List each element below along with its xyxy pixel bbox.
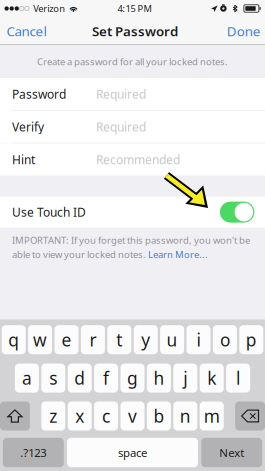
- button[interactable]: e: [54, 325, 78, 354]
- button[interactable]: k: [200, 364, 224, 393]
- staticText: .?123: [20, 445, 46, 460]
- staticText: p: [246, 328, 257, 351]
- button[interactable]: y: [134, 325, 158, 354]
- button[interactable]: Shift: [0, 401, 30, 430]
- staticText: f: [103, 366, 109, 390]
- staticText: Learn More...: [148, 248, 208, 261]
- button[interactable]: w: [28, 325, 52, 354]
- staticText: s: [49, 366, 57, 390]
- staticText: r: [89, 328, 96, 351]
- staticText: Recommended: [96, 151, 180, 168]
- button[interactable]: b: [147, 401, 171, 430]
- staticText: b: [153, 404, 164, 428]
- button[interactable]: d: [68, 364, 92, 393]
- staticText: Cancel: [6, 22, 46, 40]
- staticText: u: [167, 328, 178, 351]
- button[interactable]: Verify: [0, 111, 265, 143]
- button[interactable]: c: [94, 401, 118, 430]
- staticText: Create a password for all your locked no…: [37, 55, 228, 68]
- staticText: Password: [12, 86, 66, 102]
- button[interactable]: Done: [218, 17, 265, 45]
- button[interactable]: o: [213, 325, 237, 354]
- staticText: Done: [227, 22, 261, 40]
- staticText: j: [183, 366, 187, 390]
- button[interactable]: r: [81, 325, 105, 354]
- button[interactable]: v: [120, 401, 144, 430]
- button[interactable]: s: [41, 364, 65, 393]
- staticText: space: [118, 445, 147, 460]
- staticText: y: [141, 328, 150, 351]
- button[interactable]: x: [68, 401, 92, 430]
- button[interactable]: i: [186, 325, 210, 354]
- staticText: Required: [96, 119, 146, 135]
- button[interactable]: n: [173, 401, 197, 430]
- button[interactable]: Hint: [0, 144, 265, 176]
- staticText: c: [102, 404, 110, 428]
- button[interactable]: Next: [201, 438, 262, 467]
- staticText: v: [128, 404, 137, 428]
- staticText: Next: [219, 445, 244, 460]
- button[interactable]: space: [67, 438, 198, 467]
- button[interactable]: j: [173, 364, 197, 393]
- staticText: Hint: [12, 151, 35, 168]
- staticText: m: [204, 404, 220, 428]
- button[interactable]: m: [200, 401, 224, 430]
- staticText: i: [196, 328, 200, 351]
- button[interactable]: q: [2, 325, 26, 354]
- button[interactable]: u: [160, 325, 184, 354]
- staticText: 4:15 PM: [117, 2, 151, 15]
- button[interactable]: a: [15, 364, 39, 393]
- button[interactable]: h: [147, 364, 171, 393]
- staticText: h: [153, 366, 164, 390]
- button[interactable]: p: [239, 325, 263, 354]
- staticText: e: [61, 328, 71, 351]
- staticText: able to view your locked notes.: [12, 248, 148, 261]
- staticText: x: [75, 404, 84, 428]
- staticText: l: [236, 366, 240, 390]
- staticText: d: [74, 366, 85, 390]
- staticText: g: [127, 366, 138, 390]
- staticText: Required: [96, 86, 146, 102]
- staticText: n: [180, 404, 191, 428]
- staticText: Use Touch ID: [12, 204, 86, 220]
- staticText: Verizon: [33, 2, 65, 15]
- button[interactable]: z: [41, 401, 65, 430]
- staticText: k: [207, 366, 216, 390]
- button[interactable]: Password: [0, 78, 265, 110]
- staticText: a: [22, 366, 32, 390]
- staticText: Set Password: [92, 22, 178, 40]
- staticText: Verify: [12, 119, 44, 135]
- staticText: IMPORTANT: If you forget this password, …: [12, 234, 250, 246]
- staticText: o: [220, 328, 230, 351]
- button[interactable]: Cancel: [0, 17, 55, 45]
- button[interactable]: l: [226, 364, 250, 393]
- staticText: q: [8, 328, 19, 351]
- button[interactable]: Learn More...: [148, 248, 208, 261]
- button[interactable]: g: [120, 364, 144, 393]
- button[interactable]: Use Touch ID: [220, 202, 254, 223]
- button[interactable]: f: [94, 364, 118, 393]
- button[interactable]: .?123: [3, 438, 64, 467]
- button[interactable]: t: [107, 325, 131, 354]
- button[interactable]: Delete: [235, 401, 265, 430]
- staticText: t: [116, 328, 122, 351]
- staticText: z: [49, 404, 57, 428]
- staticText: w: [33, 328, 47, 351]
